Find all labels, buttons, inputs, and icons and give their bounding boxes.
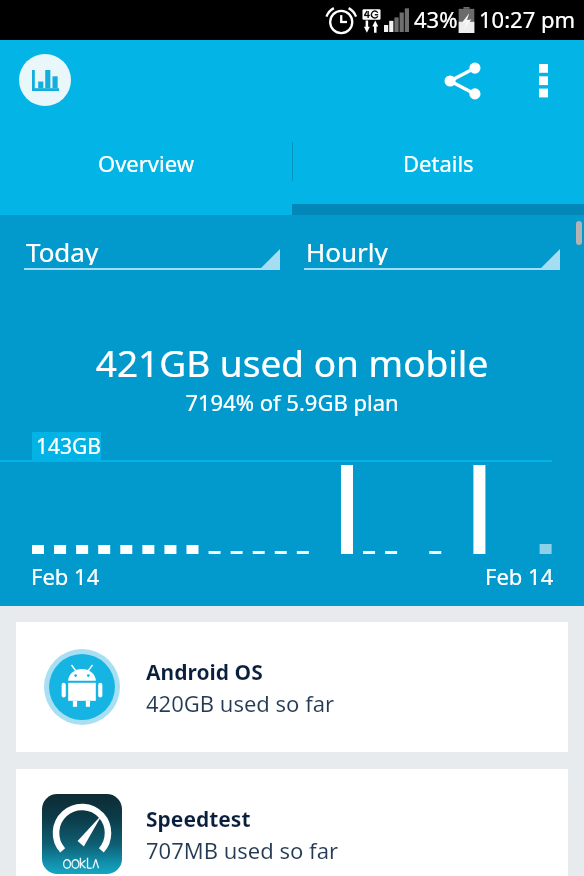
- staticText: 421GB used on mobile: [0, 337, 584, 387]
- button[interactable]: Hourly: [304, 239, 560, 270]
- staticText: Today: [26, 234, 99, 265]
- staticText: Hourly: [306, 234, 388, 265]
- staticText: Android OS: [146, 658, 263, 687]
- button[interactable]: Share: [434, 53, 490, 109]
- staticText: Overview: [98, 148, 194, 178]
- staticText: Feb 14: [31, 561, 100, 591]
- button[interactable]: Overview: [0, 120, 292, 215]
- button[interactable]: Data usage: [19, 54, 71, 106]
- button[interactable]: Details: [292, 120, 584, 215]
- button[interactable]: More options: [515, 48, 571, 112]
- button[interactable]: Android OS: [16, 622, 568, 752]
- button[interactable]: Speedtest: [16, 769, 568, 876]
- staticText: 707MB used so far: [146, 835, 339, 865]
- button[interactable]: Today: [24, 239, 280, 270]
- staticText: 10:27 pm: [479, 4, 576, 34]
- staticText: Feb 14: [485, 561, 554, 591]
- staticText: 43%: [414, 4, 458, 34]
- staticText: Speedtest: [146, 805, 251, 834]
- staticText: 7194% of 5.9GB plan: [0, 387, 584, 417]
- staticText: 143GB: [36, 432, 101, 461]
- staticText: Details: [403, 148, 474, 178]
- staticText: 420GB used so far: [146, 688, 335, 718]
